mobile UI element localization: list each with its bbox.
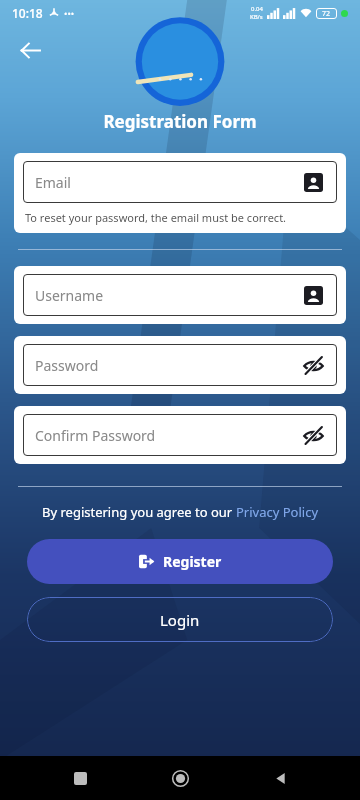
staticText: ••• bbox=[64, 7, 75, 19]
staticText: 72 bbox=[322, 9, 331, 19]
button[interactable]: Toggle password visibility bbox=[301, 423, 325, 447]
button[interactable]: Login bbox=[27, 597, 333, 642]
button[interactable]: Account bbox=[301, 170, 325, 194]
button[interactable]: Back bbox=[10, 30, 50, 70]
button[interactable]: Home bbox=[160, 758, 200, 798]
staticText: Register bbox=[163, 552, 222, 571]
button[interactable]: Register bbox=[27, 539, 333, 584]
button[interactable]: Recents bbox=[60, 758, 100, 798]
staticText: Username bbox=[35, 286, 301, 305]
button[interactable]: Confirm Password bbox=[14, 406, 346, 464]
staticText: By registering you agree to our bbox=[42, 503, 236, 521]
button[interactable]: Toggle password visibility bbox=[301, 353, 325, 377]
staticText: To reset your password, the email must b… bbox=[25, 210, 287, 225]
button[interactable]: Back bbox=[260, 758, 300, 798]
staticText: Confirm Password bbox=[35, 426, 301, 445]
staticText: 10:18 bbox=[12, 5, 43, 21]
staticText: Password bbox=[35, 356, 301, 375]
staticText: KB/s bbox=[250, 13, 263, 21]
button[interactable]: Privacy Policy bbox=[236, 503, 319, 521]
button[interactable]: Password bbox=[14, 336, 346, 394]
staticText: Email bbox=[35, 173, 301, 192]
button[interactable]: Username bbox=[14, 266, 346, 324]
staticText: Privacy Policy bbox=[236, 503, 319, 521]
button[interactable]: Email bbox=[14, 153, 346, 233]
staticText: 0.04 bbox=[251, 5, 263, 13]
staticText: Registration Form bbox=[0, 110, 360, 133]
staticText: Login bbox=[160, 610, 200, 630]
button[interactable]: Account bbox=[301, 283, 325, 307]
